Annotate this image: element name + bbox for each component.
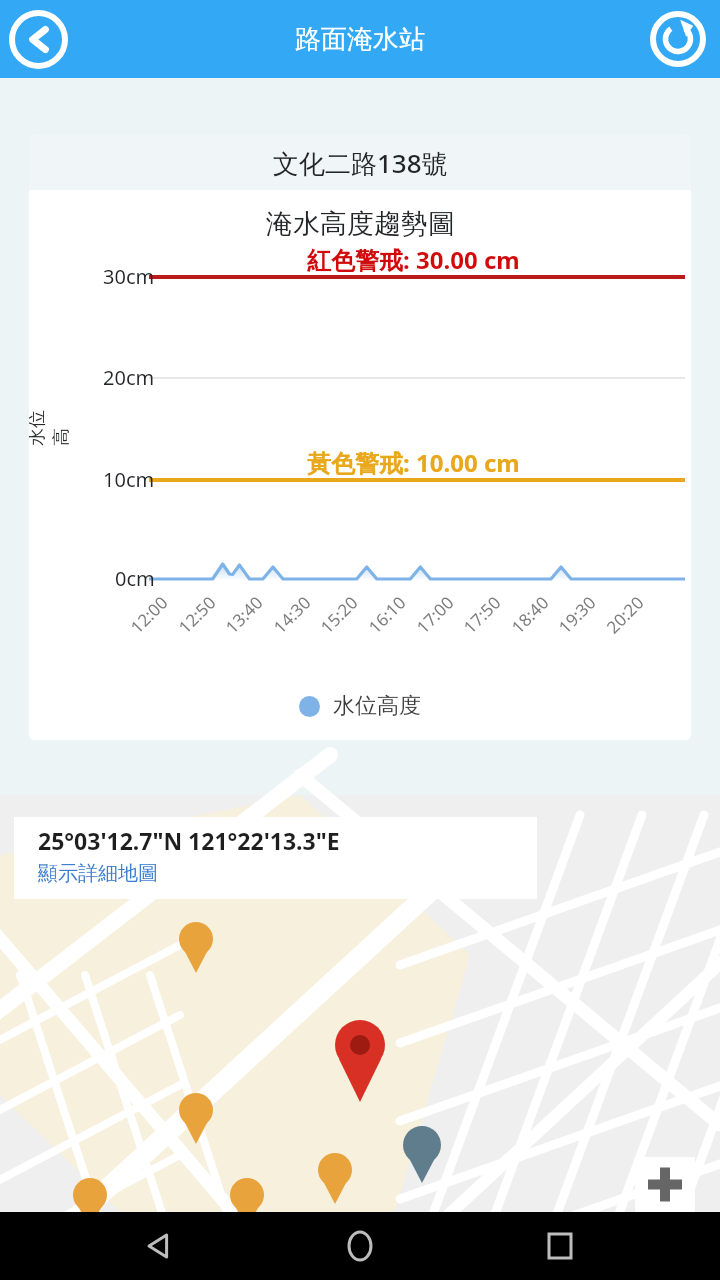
- staticText: 18:40: [506, 591, 554, 638]
- button[interactable]: 25°03'12.7"N 121°22'13.3"E: [14, 817, 537, 899]
- staticText: 30cm: [103, 263, 155, 290]
- button[interactable]: 文化二路138號: [29, 135, 691, 740]
- staticText: 12:50: [173, 591, 221, 638]
- staticText: 水位高度: [333, 692, 421, 720]
- staticText: 15:20: [315, 591, 363, 638]
- staticText: 路面淹水站: [295, 23, 425, 56]
- button[interactable]: Home: [320, 1212, 400, 1280]
- button[interactable]: 25°03'12.7"N 121°22'13.3"E: [0, 795, 720, 1212]
- staticText: 0cm: [115, 565, 155, 592]
- staticText: 25°03'12.7"N 121°22'13.3"E: [38, 825, 340, 856]
- staticText: 淹水高度趨勢圖: [266, 207, 455, 241]
- staticText: 文化二路138號: [273, 145, 448, 181]
- staticText: 16:10: [363, 591, 411, 638]
- button[interactable]: 水位高度: [299, 692, 421, 720]
- button[interactable]: Back: [120, 1212, 200, 1280]
- staticText: 12:00: [125, 591, 173, 638]
- staticText: 紅色警戒: 30.00 cm: [307, 243, 520, 276]
- staticText: 20:20: [601, 591, 649, 638]
- staticText: 20cm: [103, 364, 155, 391]
- button[interactable]: Back: [7, 8, 70, 71]
- button[interactable]: Zoom in: [635, 1157, 695, 1212]
- staticText: 14:30: [268, 591, 316, 638]
- staticText: 13:40: [220, 591, 268, 638]
- staticText: 19:30: [553, 591, 601, 638]
- staticText: 17:50: [458, 591, 506, 638]
- button[interactable]: Recents: [520, 1212, 600, 1280]
- staticText: 17:00: [411, 591, 459, 638]
- staticText: 水位高: [29, 410, 72, 446]
- staticText: 10cm: [103, 466, 155, 493]
- button[interactable]: Refresh: [649, 10, 707, 68]
- staticText: 黃色警戒: 10.00 cm: [307, 446, 520, 479]
- staticText: 顯示詳細地圖: [38, 861, 158, 886]
